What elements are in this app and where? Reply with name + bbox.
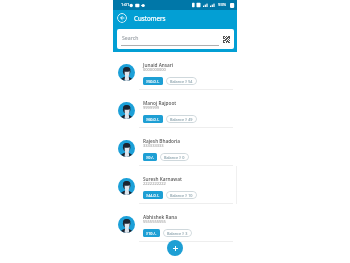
- staticText: Suresh Karnawat: [143, 176, 182, 182]
- button[interactable]: Back: [117, 13, 127, 23]
- staticText: Junaid Ansari: [143, 62, 174, 68]
- button[interactable]: Balance ₹ 54: [166, 77, 197, 85]
- button[interactable]: Suresh Karnawat: [113, 166, 237, 204]
- staticText: Balance ₹ 54: [170, 79, 193, 84]
- staticText: ₹60.0 /-: [146, 117, 160, 122]
- staticText: Rajesh Bhadoria: [143, 138, 181, 144]
- staticText: Search: [122, 34, 139, 41]
- staticText: Manoj Rajpoot: [143, 100, 177, 106]
- button[interactable]: Rajesh Bhadoria: [113, 128, 237, 166]
- button[interactable]: Balance ₹ 3: [163, 229, 192, 237]
- button[interactable]: ₹44.0 /-: [143, 191, 163, 199]
- button[interactable]: Manoj Rajpoot: [113, 90, 237, 128]
- staticText: ₹0 /-: [146, 155, 154, 160]
- button[interactable]: Balance ₹ 49: [166, 115, 197, 123]
- button[interactable]: Abhishek Rana: [113, 204, 237, 242]
- staticText: ₹10 /-: [146, 231, 157, 236]
- staticText: ₹50.0 /-: [146, 79, 160, 84]
- staticText: 333333333: [143, 143, 164, 148]
- button[interactable]: ₹50.0 /-: [143, 77, 163, 85]
- button[interactable]: Junaid Ansari: [113, 52, 237, 90]
- staticText: Balance ₹ 49: [170, 117, 193, 122]
- staticText: 9999999: [143, 105, 160, 110]
- staticText: Balance ₹ 3: [167, 231, 188, 236]
- staticText: 1:01: [121, 2, 130, 8]
- button[interactable]: Balance ₹ 0: [160, 153, 189, 161]
- button[interactable]: ₹0 /-: [143, 153, 157, 161]
- staticText: 5555555555: [143, 219, 166, 224]
- button[interactable]: Search: [117, 29, 234, 49]
- staticText: 93%: [218, 2, 227, 8]
- staticText: 0000000000: [143, 67, 166, 72]
- button[interactable]: Add customer: [167, 240, 183, 256]
- staticText: Balance ₹ 0: [164, 155, 185, 160]
- staticText: 2222222222: [143, 181, 166, 186]
- staticText: ₹44.0 /-: [146, 193, 160, 198]
- button[interactable]: Balance ₹ 10: [166, 191, 197, 199]
- button[interactable]: Scan QR code: [223, 36, 230, 43]
- staticText: Customers: [134, 14, 166, 22]
- staticText: Balance ₹ 10: [170, 193, 193, 198]
- staticText: Abhishek Rana: [143, 214, 177, 220]
- button[interactable]: ₹10 /-: [143, 229, 160, 237]
- button[interactable]: ₹60.0 /-: [143, 115, 163, 123]
